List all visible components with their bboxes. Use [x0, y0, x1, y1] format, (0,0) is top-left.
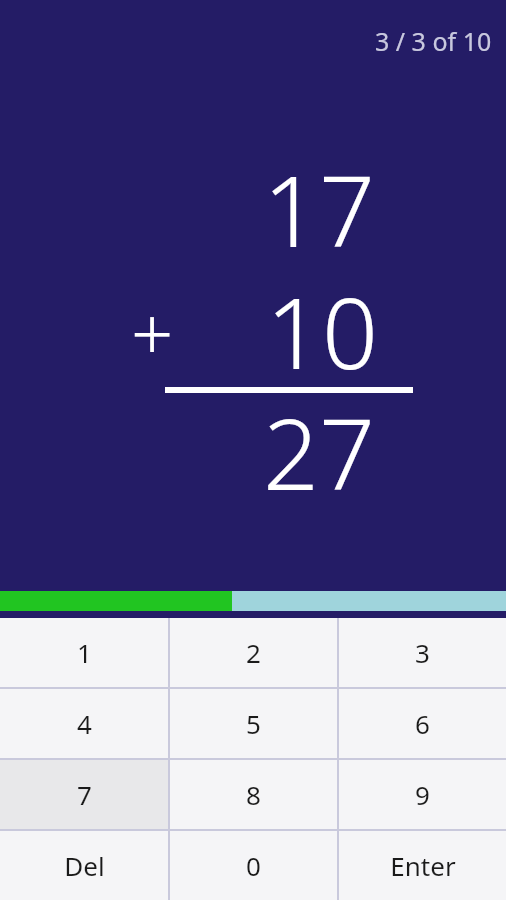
- staticText: 10: [178, 264, 378, 397]
- button[interactable]: 1: [0, 618, 168, 687]
- button[interactable]: 3: [339, 618, 506, 687]
- staticText: 8: [246, 777, 261, 812]
- staticText: 0: [246, 848, 261, 883]
- staticText: 3: [415, 635, 430, 670]
- staticText: 17: [175, 142, 375, 275]
- button[interactable]: 0: [170, 831, 337, 900]
- staticText: +: [131, 282, 174, 383]
- staticText: 2: [246, 635, 261, 670]
- staticText: 4: [77, 706, 92, 741]
- staticText: Enter: [390, 848, 456, 883]
- staticText: 3 / 3 of 10: [375, 24, 492, 58]
- staticText: 9: [415, 777, 430, 812]
- button[interactable]: Del: [0, 831, 168, 900]
- staticText: 7: [77, 777, 92, 812]
- button[interactable]: 6: [339, 689, 506, 758]
- staticText: 5: [246, 706, 261, 741]
- button[interactable]: 7: [0, 760, 168, 829]
- button[interactable]: 9: [339, 760, 506, 829]
- button[interactable]: 2: [170, 618, 337, 687]
- button[interactable]: Enter: [339, 831, 506, 900]
- staticText: Del: [64, 848, 105, 883]
- button[interactable]: 5: [170, 689, 337, 758]
- staticText: 6: [415, 706, 430, 741]
- staticText: 1: [77, 635, 92, 670]
- staticText: 27: [175, 385, 375, 518]
- button[interactable]: 8: [170, 760, 337, 829]
- button[interactable]: 4: [0, 689, 168, 758]
